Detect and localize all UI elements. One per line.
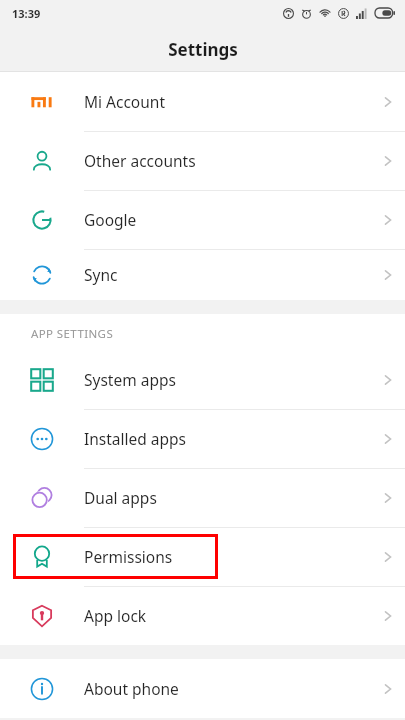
- staticText: Google: [84, 209, 371, 230]
- button[interactable]: App lock: [0, 586, 405, 645]
- button[interactable]: Dual apps: [0, 468, 405, 527]
- button[interactable]: About phone: [0, 659, 405, 718]
- staticText: App lock: [84, 605, 371, 626]
- button[interactable]: Google: [0, 190, 405, 249]
- staticText: About phone: [84, 678, 371, 699]
- button[interactable]: Sync: [0, 249, 405, 300]
- staticText: Mi Account: [84, 91, 371, 112]
- staticText: Other accounts: [84, 150, 371, 171]
- staticText: APP SETTINGS: [31, 326, 114, 342]
- staticText: Sync: [84, 264, 371, 285]
- staticText: Dual apps: [84, 487, 371, 508]
- staticText: System apps: [84, 369, 371, 390]
- button[interactable]: Permissions: [0, 527, 405, 586]
- staticText: Installed apps: [84, 428, 371, 449]
- staticText: Permissions: [84, 546, 371, 567]
- button[interactable]: Installed apps: [0, 409, 405, 468]
- staticText: 13:39: [12, 6, 41, 21]
- button[interactable]: Mi Account: [0, 72, 405, 131]
- button[interactable]: System apps: [0, 350, 405, 409]
- staticText: Settings: [168, 38, 238, 61]
- button[interactable]: Other accounts: [0, 131, 405, 190]
